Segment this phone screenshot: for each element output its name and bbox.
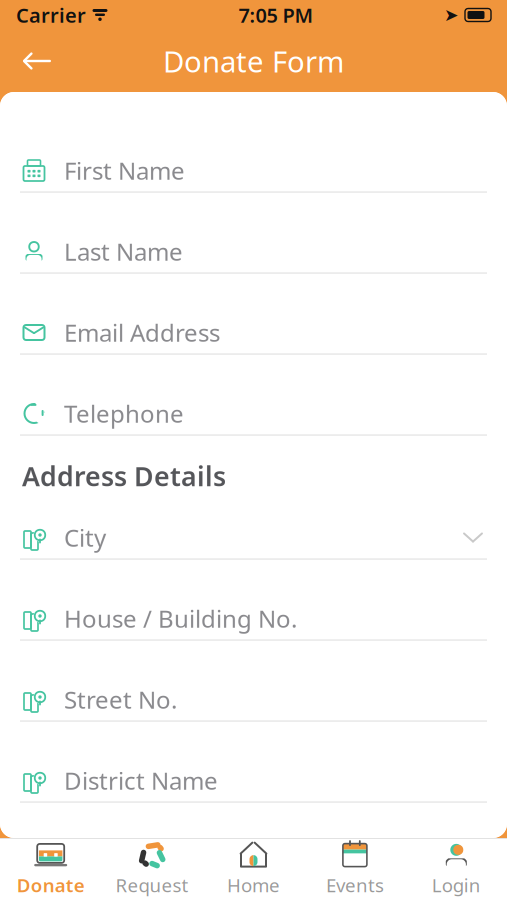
button[interactable]: Request (101, 839, 203, 900)
staticText: Donate Form (163, 41, 344, 80)
button[interactable]: Email Address (0, 302, 507, 364)
staticText: Street No. (64, 684, 177, 715)
button[interactable]: Back (14, 39, 60, 83)
staticText: Carrier (16, 2, 86, 28)
staticText: Telephone (64, 398, 184, 429)
button[interactable]: Donate (0, 839, 101, 900)
button[interactable]: City (0, 507, 507, 569)
staticText: 7:05 PM (238, 2, 313, 28)
button[interactable]: District Name (0, 750, 507, 812)
button[interactable]: Last Name (0, 221, 507, 283)
staticText: Email Address (64, 317, 220, 348)
staticText: Address Details (22, 458, 226, 494)
button[interactable]: Home (203, 839, 304, 900)
staticText: First Name (64, 155, 185, 186)
staticText: Last Name (64, 236, 183, 267)
staticText: Events (326, 873, 384, 897)
staticText: Home (227, 873, 280, 897)
staticText: House / Building No. (64, 603, 297, 634)
staticText: City (64, 522, 106, 553)
button[interactable]: Street No. (0, 669, 507, 731)
staticText: Request (116, 873, 189, 897)
staticText: Donate (17, 873, 85, 897)
button[interactable]: Events (304, 839, 406, 900)
staticText: Login (432, 873, 481, 897)
button[interactable]: House / Building No. (0, 588, 507, 650)
button[interactable]: First Name (0, 140, 507, 202)
button[interactable]: Login (406, 839, 507, 900)
staticText: District Name (64, 765, 218, 796)
staticText: ➤ (444, 5, 459, 25)
button[interactable]: Telephone (0, 383, 507, 445)
